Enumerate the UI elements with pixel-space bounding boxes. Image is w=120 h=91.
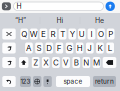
staticText: 123 <box>20 78 30 85</box>
button[interactable]: K <box>96 42 104 53</box>
staticText: Y <box>70 29 75 39</box>
staticText: S <box>37 43 42 53</box>
button[interactable]: Q <box>20 28 28 39</box>
staticText: Z <box>33 58 38 67</box>
button[interactable]: V <box>62 57 70 68</box>
staticText: D <box>46 43 52 53</box>
button[interactable] <box>2 28 16 39</box>
button[interactable]: N <box>82 57 90 68</box>
button[interactable]: S <box>35 42 43 53</box>
staticText: “H” <box>15 16 26 25</box>
button[interactable]: T <box>59 28 66 39</box>
staticText: C <box>53 58 59 67</box>
staticText: V <box>63 58 69 67</box>
button[interactable]: O <box>97 28 105 39</box>
button[interactable]: 123 <box>20 76 31 87</box>
staticText: N <box>83 58 89 67</box>
button[interactable]: L <box>106 42 114 53</box>
button[interactable] <box>2 76 16 87</box>
staticText: X <box>43 58 48 67</box>
staticText: A <box>26 43 32 53</box>
button[interactable]: J <box>86 42 94 53</box>
staticText: M <box>93 58 100 67</box>
button[interactable] <box>2 42 16 53</box>
button[interactable]: W <box>30 28 38 39</box>
staticText: R <box>51 29 56 39</box>
staticText: G <box>66 43 72 53</box>
button[interactable]: Send <box>105 2 115 11</box>
staticText: W <box>30 29 38 39</box>
button[interactable]: X <box>42 57 50 68</box>
button[interactable]: I <box>88 28 95 39</box>
button[interactable]: U <box>78 28 86 39</box>
button[interactable]: R <box>49 28 57 39</box>
button[interactable]: Z <box>32 57 39 68</box>
button[interactable]: B <box>72 57 80 68</box>
staticText: O <box>98 29 104 39</box>
button[interactable] <box>103 57 116 68</box>
button[interactable]: M <box>93 57 100 68</box>
button[interactable]: Apps <box>2 2 11 10</box>
button[interactable]: return <box>93 76 116 87</box>
button[interactable] <box>19 57 28 68</box>
button[interactable]: G <box>66 42 73 53</box>
button[interactable] <box>33 76 41 87</box>
button[interactable]: C <box>52 57 60 68</box>
staticText: L <box>108 43 113 53</box>
staticText: T <box>60 29 65 39</box>
staticText: B <box>74 58 79 67</box>
button[interactable]: H <box>76 42 83 53</box>
staticText: J <box>87 43 92 53</box>
staticText: K <box>97 43 102 53</box>
staticText: F <box>57 43 62 53</box>
button[interactable]: H <box>13 2 103 11</box>
staticText: Q <box>21 29 27 39</box>
button[interactable] <box>2 57 16 68</box>
button[interactable] <box>43 76 52 87</box>
button[interactable]: He <box>80 13 119 27</box>
button[interactable]: D <box>45 42 53 53</box>
staticText: Hi <box>56 16 63 25</box>
staticText: U <box>79 29 85 39</box>
staticText: He <box>95 16 104 25</box>
button[interactable]: P <box>107 28 114 39</box>
staticText: E <box>41 29 46 39</box>
button[interactable]: space <box>56 76 90 87</box>
staticText: H <box>77 43 83 53</box>
staticText: I <box>90 29 92 39</box>
staticText: P <box>108 29 113 39</box>
button[interactable]: Hi <box>40 13 79 27</box>
button[interactable]: “H” <box>1 13 40 27</box>
staticText: space <box>63 78 82 85</box>
button[interactable]: A <box>25 42 33 53</box>
button[interactable]: Y <box>68 28 76 39</box>
staticText: H <box>16 2 21 10</box>
staticText: return <box>95 78 114 85</box>
button[interactable]: F <box>55 42 63 53</box>
button[interactable]: E <box>40 28 47 39</box>
